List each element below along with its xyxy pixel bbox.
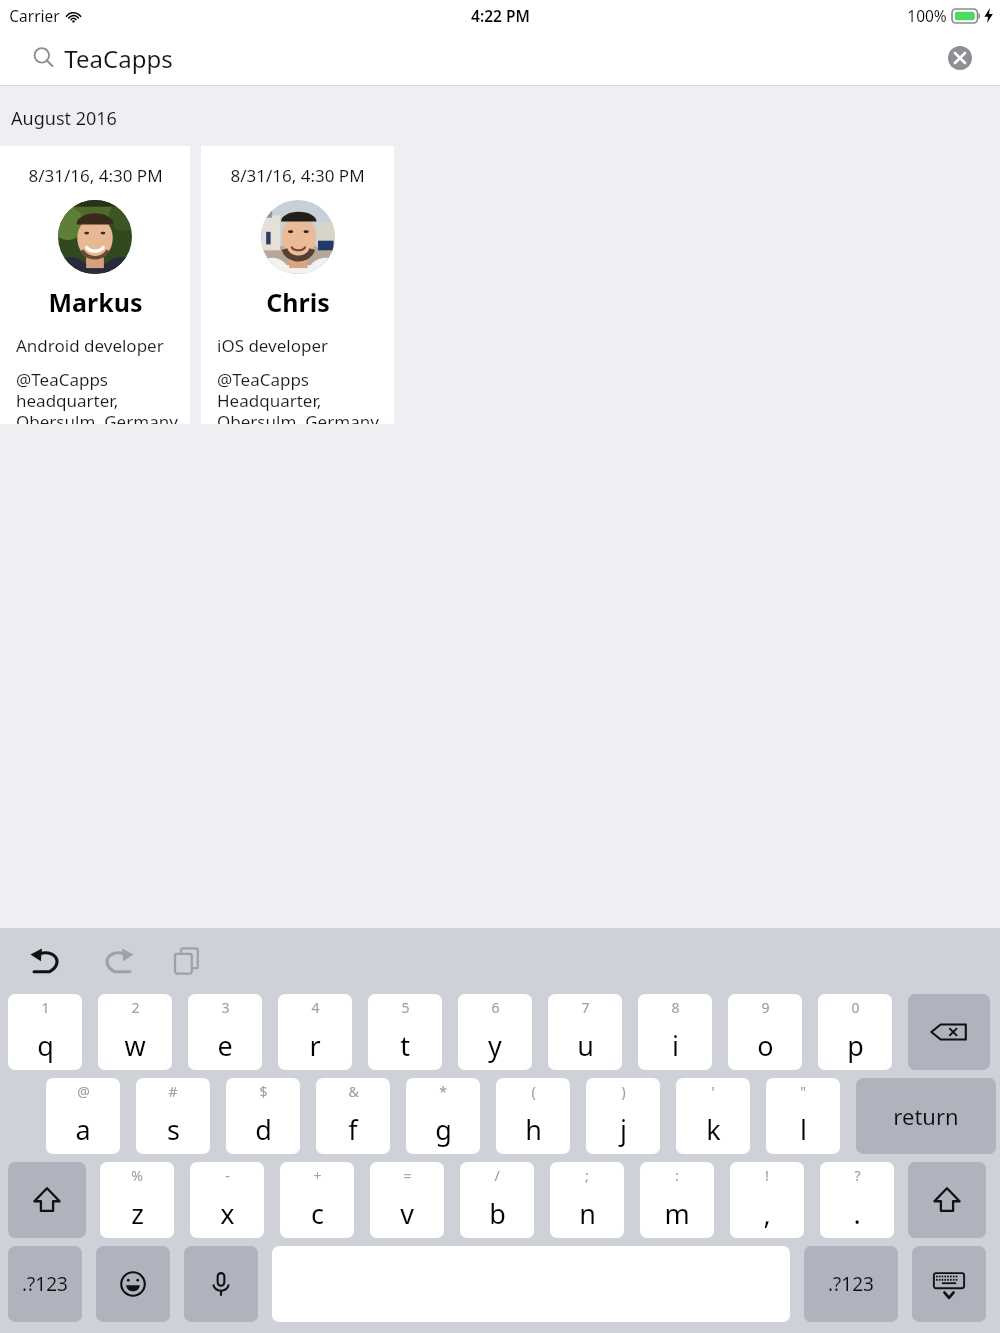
button[interactable]: 9 bbox=[728, 994, 802, 1070]
staticText: ' bbox=[711, 1082, 715, 1101]
staticText: w bbox=[124, 1027, 146, 1064]
button[interactable]: Shift bbox=[8, 1162, 86, 1238]
button[interactable]: 4 bbox=[278, 994, 352, 1070]
staticText: 8/31/16, 4:30 PM bbox=[230, 164, 365, 187]
staticText: 8 bbox=[671, 998, 680, 1017]
staticText: .?123 bbox=[22, 1271, 68, 1297]
staticText: iOS developer bbox=[217, 334, 329, 357]
button[interactable]: Shift bbox=[908, 1162, 986, 1238]
staticText: ; bbox=[585, 1166, 589, 1185]
button[interactable]: $ bbox=[226, 1078, 300, 1154]
staticText: . bbox=[853, 1195, 861, 1232]
staticText: b bbox=[489, 1195, 506, 1232]
button[interactable]: Emoji bbox=[96, 1246, 170, 1322]
button[interactable]: 6 bbox=[458, 994, 532, 1070]
staticText: e bbox=[217, 1027, 233, 1064]
staticText: 9 bbox=[761, 998, 770, 1017]
button[interactable]: + bbox=[280, 1162, 354, 1238]
staticText: 4 bbox=[311, 998, 320, 1017]
button[interactable]: Dictation bbox=[184, 1246, 258, 1322]
button[interactable]: * bbox=[406, 1078, 480, 1154]
button[interactable]: .?123 bbox=[804, 1246, 898, 1322]
button[interactable]: Paste bbox=[164, 938, 210, 984]
button[interactable]: - bbox=[190, 1162, 264, 1238]
button[interactable]: .?123 bbox=[8, 1246, 82, 1322]
staticText: Markus bbox=[48, 285, 143, 319]
button[interactable]: " bbox=[766, 1078, 840, 1154]
staticText: o bbox=[757, 1027, 774, 1064]
staticText: r bbox=[309, 1027, 321, 1064]
staticText: TeaCapps bbox=[64, 42, 173, 75]
staticText: # bbox=[168, 1082, 178, 1101]
staticText: + bbox=[313, 1166, 322, 1185]
staticText: v bbox=[400, 1195, 414, 1232]
staticText: 4:22 PM bbox=[471, 5, 530, 26]
button[interactable]: 3 bbox=[188, 994, 262, 1070]
staticText: y bbox=[488, 1027, 502, 1064]
staticText: - bbox=[225, 1166, 230, 1185]
button[interactable]: ' bbox=[676, 1078, 750, 1154]
staticText: i bbox=[672, 1027, 679, 1064]
staticText: = bbox=[403, 1166, 412, 1185]
staticText: & bbox=[348, 1082, 359, 1101]
staticText: x bbox=[220, 1195, 235, 1232]
staticText: ) bbox=[621, 1082, 626, 1101]
staticText: m bbox=[664, 1195, 690, 1232]
button[interactable]: TeaCapps bbox=[0, 30, 1000, 86]
button[interactable]: 0 bbox=[818, 994, 892, 1070]
button[interactable]: 1 bbox=[8, 994, 82, 1070]
staticText: c bbox=[311, 1195, 324, 1232]
button[interactable]: = bbox=[370, 1162, 444, 1238]
button[interactable]: 7 bbox=[548, 994, 622, 1070]
staticText: $ bbox=[259, 1082, 268, 1101]
button[interactable]: 2 bbox=[98, 994, 172, 1070]
button[interactable]: @ bbox=[46, 1078, 120, 1154]
button[interactable]: return bbox=[856, 1078, 996, 1154]
staticText: ? bbox=[854, 1166, 861, 1185]
staticText: j bbox=[620, 1111, 627, 1148]
staticText: f bbox=[348, 1111, 358, 1148]
staticText: / bbox=[494, 1166, 500, 1185]
staticText: Carrier bbox=[9, 5, 60, 26]
staticText: d bbox=[255, 1111, 272, 1148]
staticText: August 2016 bbox=[11, 106, 117, 131]
button[interactable]: # bbox=[136, 1078, 210, 1154]
button[interactable]: Backspace bbox=[908, 994, 990, 1070]
button[interactable]: 8/31/16, 4:30 PM bbox=[201, 146, 394, 424]
staticText: g bbox=[435, 1111, 452, 1148]
button[interactable]: 8 bbox=[638, 994, 712, 1070]
button[interactable]: Hide keyboard bbox=[912, 1246, 986, 1322]
staticText: 2 bbox=[131, 998, 140, 1017]
staticText: h bbox=[525, 1111, 542, 1148]
staticText: 3 bbox=[221, 998, 230, 1017]
staticText: z bbox=[131, 1195, 144, 1232]
staticText: l bbox=[800, 1111, 807, 1148]
button[interactable]: 8/31/16, 4:30 PM bbox=[0, 146, 190, 424]
button[interactable]: : bbox=[640, 1162, 714, 1238]
staticText: @TeaCapps Headquarter, Obersulm, Germany bbox=[217, 368, 379, 424]
button[interactable]: ? bbox=[820, 1162, 894, 1238]
button[interactable]: / bbox=[460, 1162, 534, 1238]
staticText: s bbox=[167, 1111, 180, 1148]
button[interactable]: % bbox=[100, 1162, 174, 1238]
staticText: ! bbox=[765, 1166, 769, 1185]
staticText: @ bbox=[77, 1082, 90, 1101]
staticText: 0 bbox=[851, 998, 860, 1017]
staticText: t bbox=[400, 1027, 410, 1064]
staticText: 5 bbox=[401, 998, 410, 1017]
button[interactable]: Clear search bbox=[948, 46, 972, 70]
button[interactable]: & bbox=[316, 1078, 390, 1154]
staticText: p bbox=[847, 1027, 864, 1064]
button[interactable]: Undo bbox=[24, 938, 70, 984]
button[interactable]: ! bbox=[730, 1162, 804, 1238]
staticText: 8/31/16, 4:30 PM bbox=[28, 164, 163, 187]
button[interactable]: ( bbox=[496, 1078, 570, 1154]
button[interactable]: ) bbox=[586, 1078, 660, 1154]
button[interactable]: 5 bbox=[368, 994, 442, 1070]
button[interactable]: Redo bbox=[94, 938, 140, 984]
staticText: @TeaCapps headquarter, Obersulm, Germany bbox=[16, 368, 178, 424]
button[interactable]: ; bbox=[550, 1162, 624, 1238]
staticText: ( bbox=[531, 1082, 536, 1101]
staticText: Android developer bbox=[16, 334, 164, 357]
